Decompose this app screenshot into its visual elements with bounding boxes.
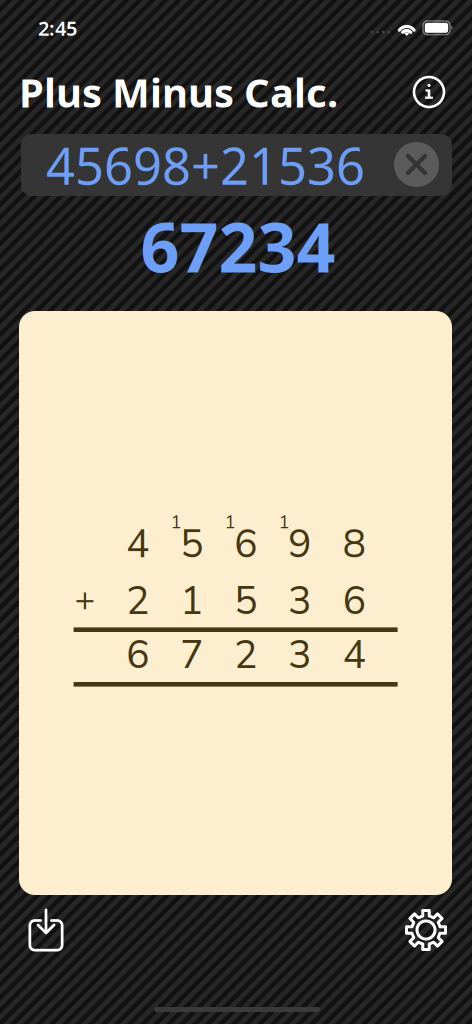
staticText: 3: [288, 628, 312, 682]
staticText: 2: [234, 628, 258, 682]
staticText: 9: [288, 517, 312, 571]
staticText: +: [74, 575, 95, 622]
button[interactable]: Plus Minus Calc.: [19, 66, 379, 118]
staticText: 45698+21536: [46, 131, 365, 199]
button[interactable]: About: [414, 77, 444, 107]
staticText: 1: [180, 574, 204, 628]
staticText: 4: [126, 517, 150, 571]
button[interactable]: 45698+21536: [21, 134, 452, 196]
staticText: 1: [224, 509, 235, 535]
button[interactable]: Clear: [394, 142, 439, 187]
staticText: 7: [180, 628, 204, 682]
staticText: 5: [234, 574, 258, 628]
staticText: 2:45: [38, 15, 77, 41]
button[interactable]: Save: [28, 908, 63, 951]
staticText: 1: [278, 509, 289, 535]
staticText: 67234: [140, 201, 335, 291]
button[interactable]: Settings: [404, 908, 447, 951]
staticText: 3: [288, 574, 312, 628]
staticText: 8: [342, 517, 366, 571]
staticText: 5: [180, 517, 204, 571]
staticText: 1: [170, 509, 181, 535]
staticText: Plus Minus Calc.: [19, 65, 338, 118]
staticText: 6: [342, 574, 366, 628]
staticText: 4: [342, 628, 366, 682]
staticText: 6: [126, 628, 150, 682]
staticText: 6: [234, 517, 258, 571]
staticText: 2: [126, 574, 150, 628]
